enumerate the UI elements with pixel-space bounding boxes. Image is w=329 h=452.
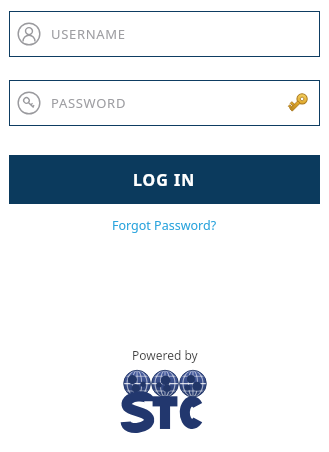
button[interactable]: USERNAME bbox=[9, 11, 320, 57]
staticText: Forgot Password? bbox=[112, 217, 217, 234]
staticText: PASSWORD bbox=[51, 94, 127, 112]
button[interactable]: Show password bbox=[284, 89, 312, 117]
button[interactable]: LOG IN bbox=[9, 155, 320, 204]
staticText: Powered by bbox=[132, 347, 198, 363]
staticText: LOG IN bbox=[133, 169, 196, 191]
button[interactable]: PASSWORD bbox=[9, 80, 320, 126]
staticText: USERNAME bbox=[51, 25, 126, 43]
button[interactable]: Forgot Password? bbox=[104, 214, 225, 237]
